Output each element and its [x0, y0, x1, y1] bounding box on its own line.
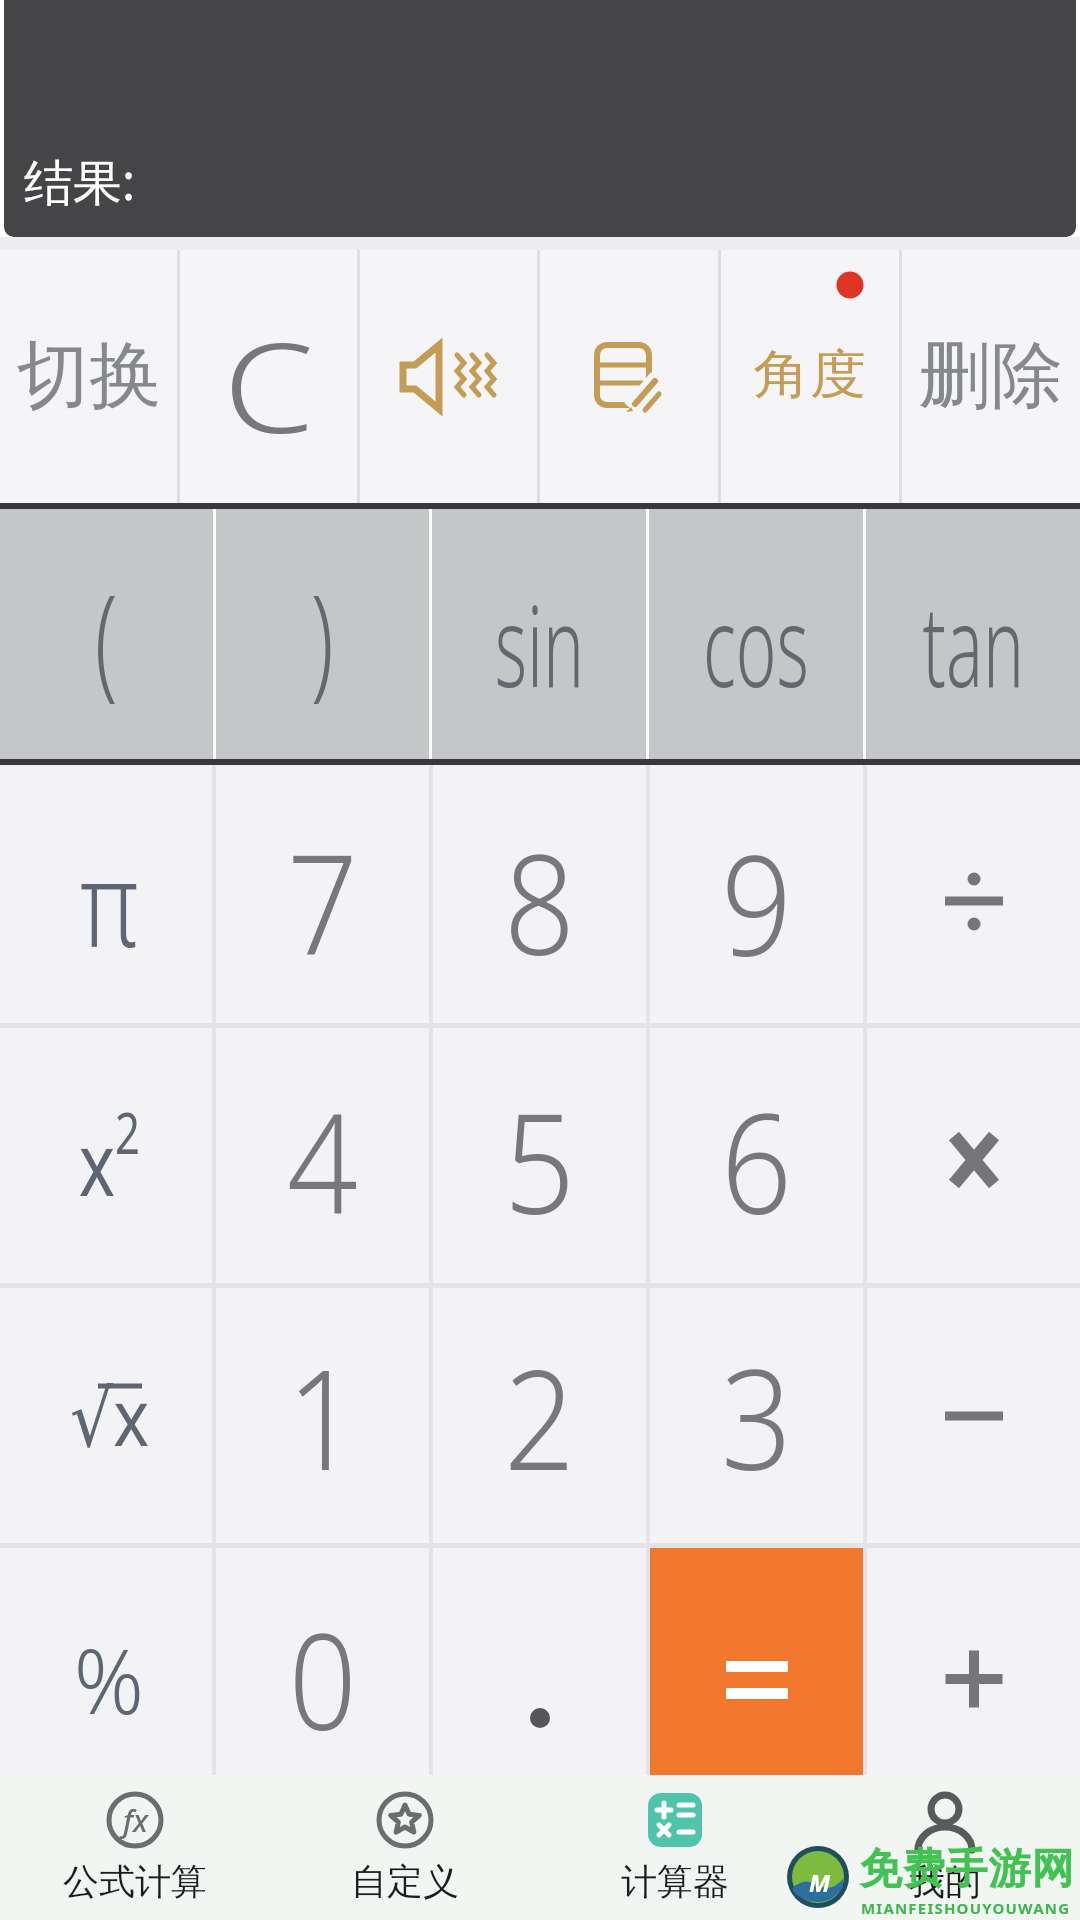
staticText: 0: [289, 1589, 357, 1769]
button[interactable]: [867, 1288, 1080, 1543]
staticText: fx: [123, 1800, 148, 1841]
staticText: cos: [703, 566, 809, 720]
staticText: 角度: [754, 342, 866, 408]
button[interactable]: 0: [216, 1548, 429, 1775]
button[interactable]: [650, 1548, 863, 1775]
staticText: MIANFEISHOUYOUWANG: [861, 1898, 1071, 1918]
button[interactable]: [867, 765, 1080, 1023]
button[interactable]: 1: [216, 1288, 429, 1543]
staticText: 6: [721, 1066, 792, 1254]
button[interactable]: 角度: [721, 250, 899, 503]
staticText: 公式计算: [63, 1859, 207, 1904]
button[interactable]: [867, 1548, 1080, 1775]
staticText: 计算器: [621, 1859, 729, 1904]
staticText: ): [311, 553, 334, 721]
button[interactable]: 计算器: [540, 1775, 810, 1920]
staticText: π: [80, 821, 139, 982]
staticText: 8: [504, 807, 575, 995]
button[interactable]: fx: [0, 1775, 270, 1920]
button[interactable]: ): [216, 509, 429, 759]
staticText: 我的: [909, 1859, 981, 1904]
button[interactable]: C: [180, 250, 357, 503]
button[interactable]: x2: [0, 1028, 212, 1283]
button[interactable]: π: [0, 765, 212, 1023]
button[interactable]: 删除: [902, 250, 1080, 503]
button[interactable]: 9: [650, 765, 863, 1023]
staticText: 1: [287, 1322, 358, 1510]
staticText: x2: [79, 1094, 140, 1222]
staticText: 2: [504, 1322, 575, 1510]
button[interactable]: 8: [433, 765, 646, 1023]
staticText: C: [223, 300, 315, 469]
staticText: 删除: [919, 331, 1063, 422]
button[interactable]: 6: [650, 1028, 863, 1283]
staticText: 5: [504, 1066, 575, 1254]
button[interactable]: [433, 1548, 646, 1775]
button[interactable]: 7: [216, 765, 429, 1023]
staticText: 免费手游网: [859, 1843, 1074, 1896]
staticText: 3: [721, 1322, 792, 1510]
button[interactable]: [540, 250, 718, 503]
button[interactable]: [867, 1028, 1080, 1283]
button[interactable]: %: [0, 1548, 212, 1775]
staticText: (: [95, 553, 118, 721]
button[interactable]: √x: [0, 1288, 212, 1543]
staticText: 4: [287, 1066, 358, 1254]
button[interactable]: [360, 250, 537, 503]
button[interactable]: 自定义: [270, 1775, 540, 1920]
staticText: 7: [287, 807, 358, 995]
staticText: 结果:: [24, 148, 136, 215]
button[interactable]: (: [0, 509, 213, 759]
button[interactable]: 3: [650, 1288, 863, 1543]
button[interactable]: 我的: [810, 1775, 1080, 1920]
staticText: √x: [70, 1363, 149, 1469]
staticText: sin: [495, 566, 584, 720]
button[interactable]: 4: [216, 1028, 429, 1283]
button[interactable]: sin: [432, 509, 646, 759]
button[interactable]: cos: [649, 509, 863, 759]
staticText: %: [74, 1617, 144, 1741]
button[interactable]: 2: [433, 1288, 646, 1543]
staticText: 9: [721, 807, 792, 995]
staticText: 切换: [17, 331, 161, 422]
staticText: 自定义: [351, 1859, 459, 1904]
staticText: M: [809, 1866, 831, 1899]
button[interactable]: 切换: [0, 250, 177, 503]
button[interactable]: tan: [866, 509, 1080, 759]
staticText: tan: [923, 566, 1024, 720]
button[interactable]: 5: [433, 1028, 646, 1283]
